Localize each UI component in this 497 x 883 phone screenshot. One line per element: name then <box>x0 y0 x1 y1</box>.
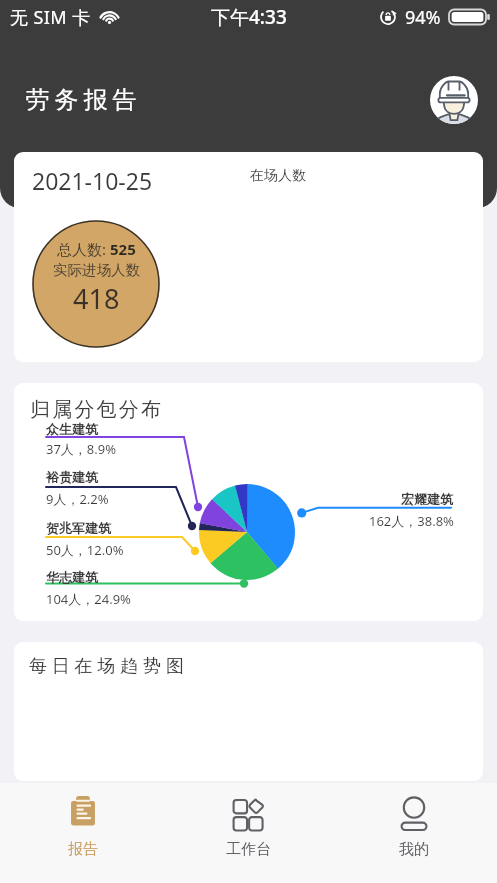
staticText: 525 <box>110 239 136 259</box>
staticText: 工作台 <box>226 840 271 859</box>
staticText: 我的 <box>399 840 429 859</box>
staticText: 162人，38.8% <box>369 512 454 530</box>
staticText: 裕贵建筑 <box>46 469 98 485</box>
staticText: 劳务报告 <box>23 85 139 115</box>
staticText: 无 SIM 卡 <box>10 5 91 30</box>
staticText: 50人，12.0% <box>46 541 124 559</box>
staticText: 每日在场趋势图 <box>29 655 189 678</box>
button[interactable]: 工作台 <box>165 783 331 883</box>
staticText: 94% <box>405 5 441 30</box>
staticText: 报告 <box>68 840 98 859</box>
staticText: 贺兆军建筑 <box>46 520 111 536</box>
staticText: 总人数: <box>57 239 110 259</box>
staticText: 众生建筑 <box>46 421 98 437</box>
staticText: 104人，24.9% <box>46 590 131 608</box>
staticText: 2021-10-25 <box>32 165 153 196</box>
button[interactable]: 我的 <box>331 783 497 883</box>
button[interactable]: 报告 <box>0 783 165 883</box>
staticText: 宏耀建筑 <box>401 491 453 507</box>
staticText: 华志建筑 <box>46 569 98 585</box>
button[interactable]: Profile <box>430 76 478 124</box>
staticText: 在场人数 <box>250 167 306 185</box>
staticText: 9人，2.2% <box>46 490 109 508</box>
staticText: 下午4:33 <box>211 4 287 30</box>
staticText: 实际进场人数 <box>53 261 140 279</box>
staticText: 归属分包分布 <box>30 397 164 422</box>
staticText: 418 <box>73 280 120 317</box>
staticText: 37人，8.9% <box>46 440 117 458</box>
